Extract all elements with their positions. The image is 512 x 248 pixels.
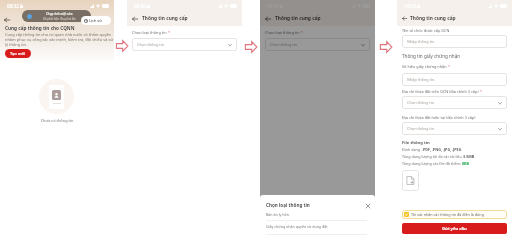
staticText: Tên tổ chức được cấp GCN — [402, 28, 450, 33]
button[interactable]: Chọn thông tin — [132, 38, 237, 51]
staticText: Thông tin cung cấp — [142, 15, 188, 22]
staticText: Chọn thông tin — [407, 126, 435, 131]
button[interactable]: Chọn thông tin — [265, 38, 370, 51]
button[interactable]: Back — [401, 15, 407, 21]
staticText: * — [447, 64, 451, 69]
button[interactable]: Nhập thông tin — [402, 73, 507, 86]
staticText: Thông tin cung cấp — [275, 15, 321, 22]
button[interactable]: Tạo mới — [5, 49, 31, 58]
staticText: 0KB — [462, 161, 470, 166]
button[interactable]: Chọn thông tin — [402, 122, 507, 135]
staticText: Địa chỉ thửa đất hiện tại (địa chính 3 c… — [402, 115, 476, 120]
staticText: Đã phát hiện Chụp hai lần — [43, 17, 76, 21]
staticText: Cung cấp thông tin cho CQNN — [5, 25, 75, 31]
staticText: Số hiệu giấy chứng nhận — [402, 64, 447, 69]
staticText: * — [300, 30, 304, 35]
staticText: Thông tin cung cấp — [410, 15, 456, 22]
button[interactable]: Close — [364, 202, 371, 209]
staticText: 09:32 — [7, 3, 19, 9]
button[interactable]: Gửi yêu cầu — [402, 223, 507, 234]
staticText: 09:10 — [267, 3, 279, 9]
staticText: Chọn thông tin — [137, 42, 165, 47]
staticText: Chọn thông tin — [407, 100, 435, 105]
staticText: * — [479, 89, 483, 94]
button[interactable]: Tôi xác nhận các thông tin đã điền là đú… — [402, 210, 507, 219]
staticText: Định dạng — [402, 147, 422, 152]
staticText: .PDF, .PNG, .JPG, .JPEG — [422, 147, 462, 152]
staticText: Chọn loại thông tin — [265, 30, 300, 35]
staticText: 10:15 — [404, 3, 416, 9]
button[interactable]: Back — [264, 15, 272, 23]
staticText: Tạo mới — [10, 51, 26, 56]
staticText: 3.5MB — [463, 154, 475, 159]
button[interactable]: Nhập thông tin — [402, 35, 507, 48]
button[interactable]: Back — [131, 15, 139, 23]
staticText: Tôi xác nhận các thông tin đã điền là đú… — [411, 212, 484, 217]
button[interactable]: Bản án ly hôn — [260, 210, 375, 219]
staticText: File thông tin — [402, 140, 430, 146]
staticText: Chưa có thông tin — [0, 118, 114, 123]
button[interactable]: Giấy chứng nhận quyền sử dụng đất — [260, 221, 375, 231]
staticText: Nhập thông tin — [407, 77, 435, 82]
staticText: Nhập thông tin — [407, 39, 435, 44]
staticText: * — [167, 30, 171, 35]
staticText: Chọn loại thông tin — [266, 202, 310, 208]
button[interactable]: Add file — [402, 170, 419, 191]
staticText: Chọn thông tin — [270, 42, 298, 47]
staticText: Chọn loại thông tin — [132, 30, 167, 35]
staticText: Tổng dung lượng các file đã thêm: — [402, 161, 462, 166]
staticText: Giấy chứng nhận quyền sử dụng đất — [266, 224, 328, 229]
staticText: Thông tin giấy chứng nhận — [402, 53, 461, 59]
button[interactable]: Back — [3, 16, 11, 24]
staticText: Lịch sử — [89, 18, 102, 23]
staticText: Cung cấp thông tin cho cơ quan nhà nước … — [5, 32, 114, 47]
staticText: Tổng dung lượng tối đa các tài liệu — [402, 154, 463, 159]
staticText: Địa chỉ thửa đất trên GCN (địa chính 3 c… — [402, 89, 479, 94]
staticText: 09:10 — [134, 3, 146, 9]
button[interactable]: Lịch sử — [81, 16, 111, 25]
staticText: Bản án ly hôn — [266, 212, 289, 217]
button[interactable]: Chọn thông tin — [402, 96, 507, 109]
staticText: Chụp ảnh một cửa — [46, 12, 73, 16]
staticText: Gửi yêu cầu — [442, 226, 467, 232]
